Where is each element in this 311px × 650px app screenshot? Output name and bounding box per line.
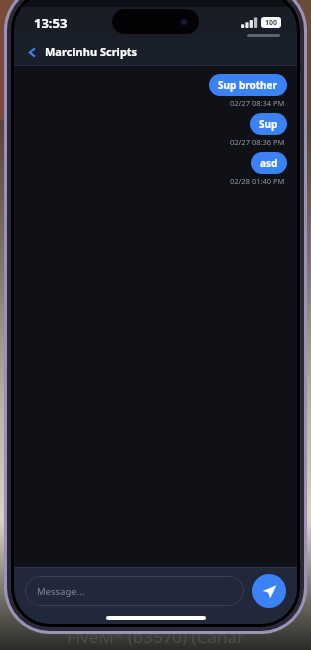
staticText: Sup bbox=[259, 117, 278, 131]
staticText: 02/27 08:34 PM bbox=[230, 98, 285, 108]
staticText: Message... bbox=[37, 585, 85, 598]
staticText: Sup brother bbox=[218, 78, 278, 92]
staticText: Marcinhu Scripts bbox=[45, 44, 138, 59]
button[interactable]: Send bbox=[252, 574, 286, 608]
staticText: 02/27 08:36 PM bbox=[230, 137, 285, 147]
staticText: asd bbox=[260, 156, 278, 170]
staticText: 100 bbox=[265, 18, 278, 28]
staticText: FiveM* (b3570) (Canar bbox=[67, 625, 245, 648]
button[interactable]: Message... bbox=[25, 576, 244, 606]
button[interactable]: Sup brother bbox=[209, 74, 287, 96]
button[interactable]: Back bbox=[14, 38, 297, 65]
staticText: 02/28 01:40 PM bbox=[230, 176, 285, 186]
button[interactable]: Back bbox=[22, 42, 42, 62]
button[interactable]: Sup bbox=[250, 113, 287, 135]
button[interactable]: asd bbox=[251, 152, 287, 174]
staticText: 13:53 bbox=[34, 14, 68, 32]
